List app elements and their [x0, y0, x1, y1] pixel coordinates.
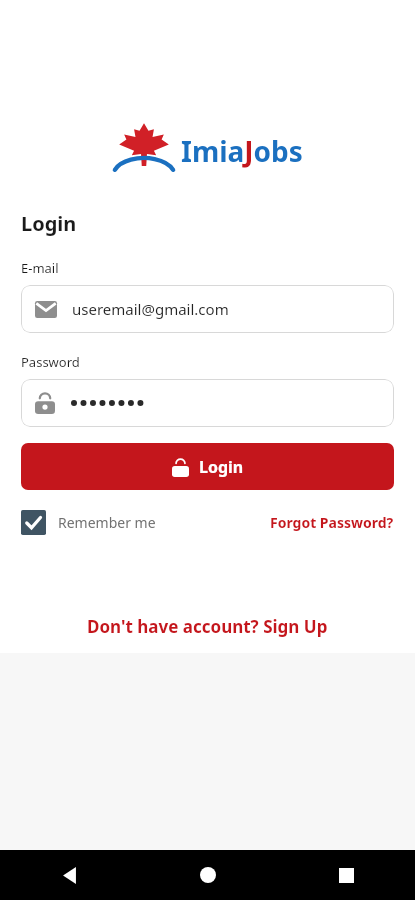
other: ImiaJobs logo: [113, 122, 175, 180]
button[interactable]: Don't have account? Sign Up: [0, 615, 415, 638]
button[interactable]: useremail@gmail.com: [21, 285, 394, 333]
staticText: E-mail: [21, 259, 59, 277]
staticText: Don't have account? Sign Up: [87, 615, 328, 638]
button[interactable]: Login: [21, 443, 394, 490]
staticText: Password: [21, 353, 80, 371]
staticText: ImiaJobs: [181, 132, 303, 170]
button[interactable]: Remember me: [21, 506, 156, 539]
button[interactable]: Home: [139, 850, 277, 900]
staticText: useremail@gmail.com: [72, 299, 229, 319]
button[interactable]: [21, 379, 394, 427]
staticText: Login: [199, 456, 244, 478]
button[interactable]: Forgot Password?: [270, 509, 394, 536]
staticText: Remember me: [58, 513, 156, 532]
button[interactable]: Back: [0, 850, 139, 900]
staticText: Forgot Password?: [270, 513, 394, 532]
staticText: Login: [21, 210, 77, 237]
button[interactable]: Recent apps: [277, 850, 415, 900]
